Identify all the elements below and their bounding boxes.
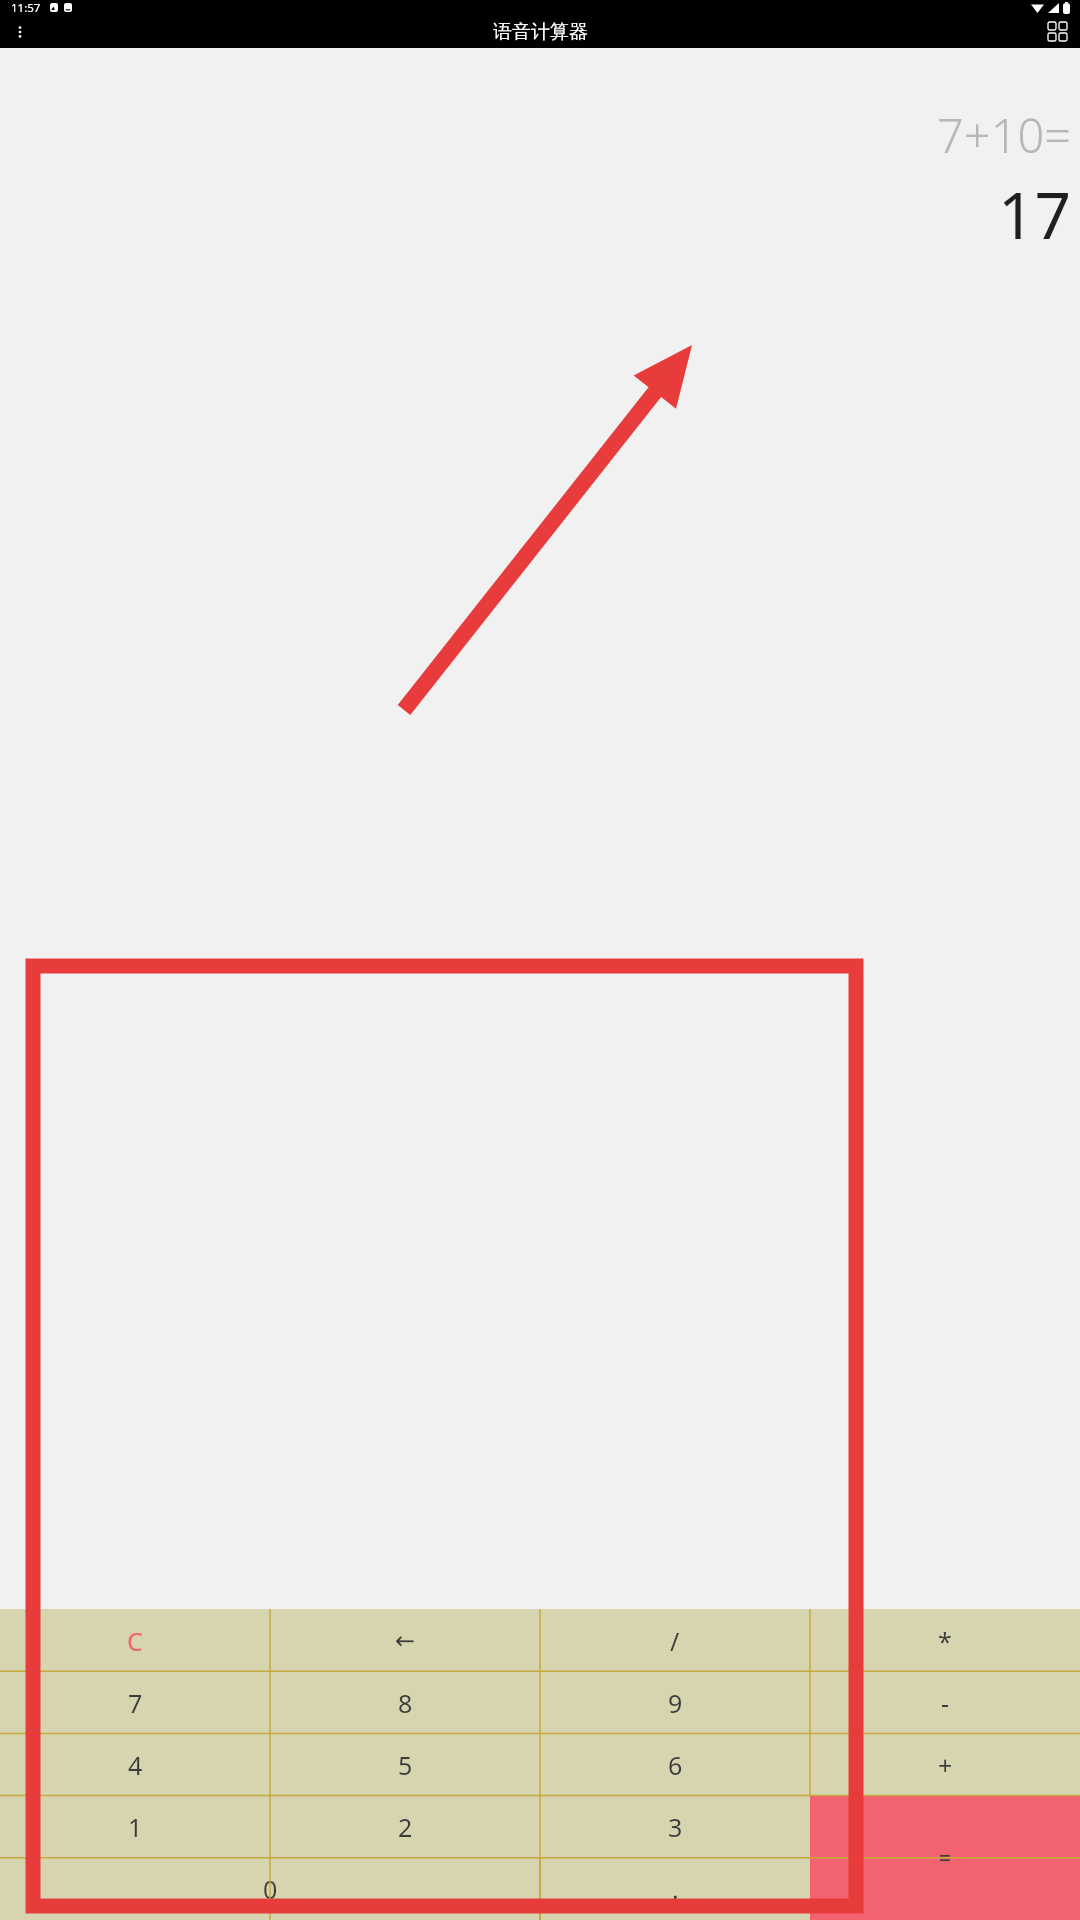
staticText: 7	[128, 1686, 143, 1720]
staticText: 0	[263, 1872, 278, 1906]
staticText: 5	[398, 1748, 413, 1782]
button[interactable]: =	[810, 1796, 1080, 1920]
staticText: 11:57	[11, 0, 41, 15]
button[interactable]: 6	[540, 1734, 810, 1796]
staticText: 1	[128, 1810, 143, 1844]
button[interactable]: /	[540, 1609, 810, 1672]
staticText: 7+10=	[937, 103, 1072, 167]
staticText: 9	[668, 1686, 683, 1720]
button[interactable]: 8	[270, 1672, 540, 1734]
button[interactable]: +	[810, 1734, 1080, 1796]
button[interactable]: *	[810, 1609, 1080, 1672]
staticText: 8	[398, 1686, 413, 1720]
staticText: 17	[998, 171, 1072, 258]
button[interactable]: .	[540, 1858, 810, 1920]
staticText: /	[670, 1624, 680, 1658]
staticText: .	[672, 1872, 679, 1906]
button[interactable]: -	[810, 1672, 1080, 1734]
button[interactable]: 3	[540, 1796, 810, 1858]
staticText: 3	[668, 1810, 683, 1844]
staticText: =	[939, 1844, 952, 1873]
staticText: 6	[668, 1748, 683, 1782]
staticText: C	[127, 1624, 143, 1658]
staticText: 语音计算器	[493, 20, 588, 44]
button[interactable]: 5	[270, 1734, 540, 1796]
staticText: *	[938, 1624, 952, 1658]
button[interactable]: More options	[2, 15, 38, 48]
button[interactable]: 0	[0, 1858, 540, 1920]
button[interactable]: 9	[540, 1672, 810, 1734]
button[interactable]: C	[0, 1609, 270, 1672]
staticText: +	[938, 1748, 953, 1782]
button[interactable]: ←	[270, 1609, 540, 1672]
button[interactable]: 1	[0, 1796, 270, 1858]
staticText: -	[941, 1686, 950, 1720]
button[interactable]: 2	[270, 1796, 540, 1858]
button[interactable]: 4	[0, 1734, 270, 1796]
staticText: 4	[128, 1748, 143, 1782]
staticText: ←	[395, 1627, 416, 1655]
staticText: 2	[398, 1810, 413, 1844]
button[interactable]: 7	[0, 1672, 270, 1734]
button[interactable]: Grid view	[1039, 15, 1075, 48]
